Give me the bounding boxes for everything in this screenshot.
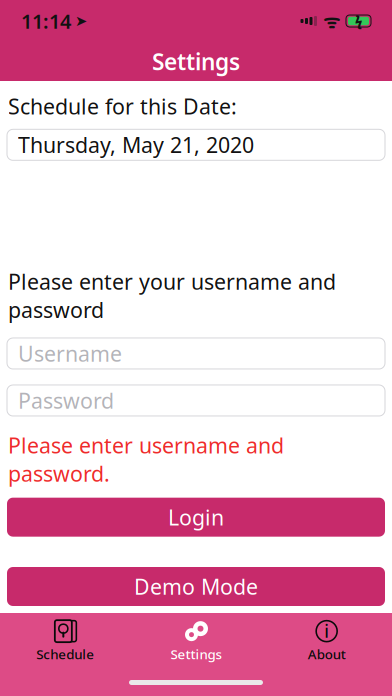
staticText: Thursday, May 21, 2020 (18, 131, 254, 159)
staticText: ᯤ (323, 9, 340, 33)
staticText: Login (168, 503, 224, 531)
staticText: About (308, 645, 346, 663)
button[interactable]: i (261, 616, 392, 665)
staticText: Schedule for this Date: (8, 92, 237, 120)
staticText: Please enter username and password. (8, 431, 284, 488)
staticText: ϟ (355, 12, 362, 30)
staticText: Username (18, 339, 122, 368)
staticText: Please enter your username and password (8, 267, 336, 324)
button[interactable]: Settings (131, 616, 261, 665)
button[interactable]: Schedule (0, 616, 131, 665)
staticText: ➤ (75, 13, 87, 29)
staticText: Settings (170, 645, 221, 663)
staticText: Password (18, 386, 114, 415)
staticText: Demo Mode (134, 572, 258, 601)
staticText: 11:14 (21, 8, 71, 34)
staticText: i (324, 620, 329, 643)
staticText: Schedule (36, 645, 94, 663)
button[interactable]: Login (7, 498, 385, 537)
button[interactable]: Demo Mode (7, 567, 385, 606)
staticText: Settings (152, 46, 240, 76)
